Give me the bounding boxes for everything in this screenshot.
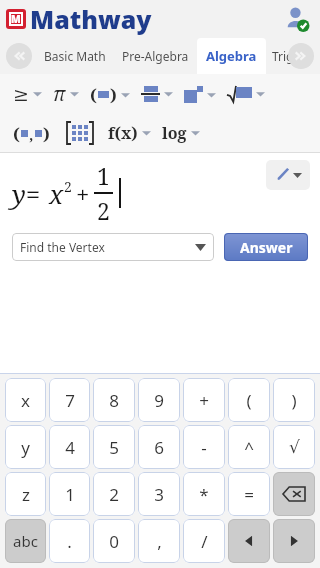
button[interactable]: - (183, 425, 225, 469)
button[interactable]: 8 (93, 378, 135, 422)
staticText: ( (246, 389, 252, 412)
button[interactable]: z (5, 472, 46, 516)
staticText: ( (13, 122, 20, 145)
button[interactable]: f(x) (105, 118, 159, 148)
button[interactable]: ^ (228, 425, 270, 469)
staticText: / (201, 530, 208, 553)
staticText: Pre-Algebra (122, 48, 189, 64)
staticText: 2 (64, 177, 72, 196)
button[interactable]: Scroll left (6, 43, 32, 69)
staticText: 5 (109, 436, 119, 459)
button[interactable]: Move left (228, 519, 270, 563)
staticText: . (67, 530, 72, 553)
button[interactable]: + (183, 378, 225, 422)
button[interactable]: ≥ (10, 79, 50, 109)
button[interactable]: 1 (49, 472, 90, 516)
staticText: + (199, 389, 209, 412)
button[interactable]: 4 (49, 425, 90, 469)
staticText: - (201, 436, 207, 459)
button[interactable]: ( (228, 378, 270, 422)
staticText: ) (291, 389, 297, 412)
staticText: Mathway (30, 2, 152, 36)
staticText: Algebra (206, 47, 257, 65)
staticText: y= (12, 176, 41, 211)
button[interactable]: Scroll right (288, 43, 314, 69)
button[interactable]: ( (10, 118, 53, 149)
staticText: 1 (65, 483, 75, 506)
staticText: 7 (65, 389, 75, 412)
staticText: ^ (244, 436, 254, 459)
button[interactable]: Delete (273, 472, 315, 516)
button[interactable]: / (183, 519, 225, 563)
button[interactable]: 0 (93, 519, 135, 563)
staticText: Answer (240, 238, 293, 257)
staticText: 8 (109, 389, 119, 412)
button[interactable]: ( (87, 79, 138, 110)
button[interactable]: √ (273, 425, 315, 469)
staticText: 4 (65, 436, 75, 459)
staticText: 2 (109, 483, 119, 506)
button[interactable]: Answer (224, 233, 308, 261)
staticText: M (11, 12, 21, 26)
staticText: z (22, 483, 30, 506)
staticText: ≥ (13, 83, 29, 105)
staticText: Basic Math (44, 48, 106, 64)
button[interactable]: abc (5, 519, 46, 563)
button[interactable] (138, 82, 181, 106)
button[interactable]: * (183, 472, 225, 516)
button[interactable]: = (228, 472, 270, 516)
button[interactable]: 6 (138, 425, 180, 469)
button[interactable]: ) (273, 378, 315, 422)
button[interactable]: 3 (138, 472, 180, 516)
staticText: 6 (154, 436, 164, 459)
button[interactable]: 2 (93, 472, 135, 516)
button[interactable] (181, 82, 224, 107)
staticText: 0 (109, 530, 119, 553)
button[interactable]: . (49, 519, 90, 563)
staticText: ) (43, 122, 50, 145)
staticText: 2 (97, 195, 110, 226)
staticText: ( (90, 83, 97, 106)
staticText: * (199, 483, 209, 506)
staticText: Find the Vertex (20, 239, 195, 255)
staticText: + (76, 177, 90, 210)
button[interactable]: Account (284, 6, 310, 32)
staticText: 1 (97, 160, 110, 191)
button[interactable]: Move right (273, 519, 315, 563)
staticText: = (244, 483, 254, 506)
staticText: , (157, 530, 162, 553)
staticText: log (162, 122, 187, 144)
button[interactable]: 5 (93, 425, 135, 469)
button[interactable]: Basic Math (42, 42, 108, 70)
button[interactable]: 9 (138, 378, 180, 422)
button[interactable]: Algebra (197, 38, 266, 74)
staticText: abc (13, 531, 38, 551)
staticText: √ (289, 437, 300, 457)
button[interactable]: Find the Vertex (12, 233, 214, 261)
button[interactable]: π (50, 77, 87, 111)
button[interactable]: Pre-Algebra (120, 42, 191, 70)
staticText: 3 (154, 483, 164, 506)
staticText: , (29, 124, 34, 144)
staticText: x (49, 176, 64, 211)
button[interactable] (63, 117, 97, 149)
staticText: 9 (154, 389, 164, 412)
staticText: y (21, 436, 30, 459)
button[interactable]: 7 (49, 378, 90, 422)
staticText: x (21, 389, 30, 412)
button[interactable]: Keyboard options (266, 160, 310, 190)
button[interactable] (224, 82, 273, 106)
button[interactable]: log (159, 118, 208, 148)
staticText: f(x) (108, 122, 138, 144)
button[interactable]: , (138, 519, 180, 563)
button[interactable]: y (5, 425, 46, 469)
staticText: π (53, 81, 66, 107)
staticText: Trig (272, 48, 294, 64)
staticText: ) (110, 83, 117, 106)
button[interactable]: x (5, 378, 46, 422)
